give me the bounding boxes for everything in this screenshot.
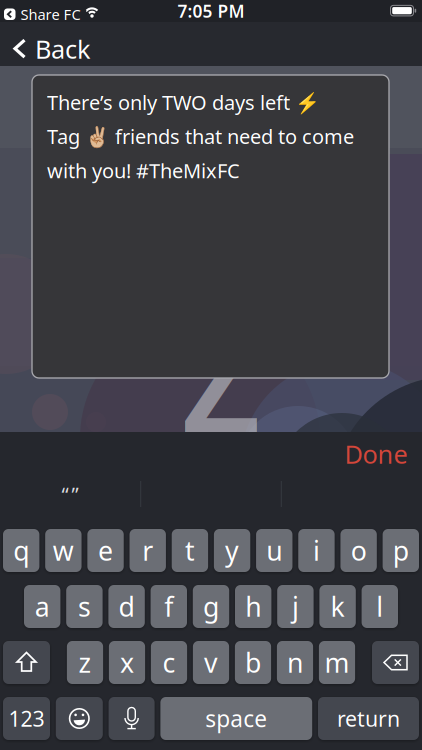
- button[interactable]: t: [172, 529, 208, 572]
- button[interactable]: i: [298, 529, 335, 572]
- staticText: w: [53, 533, 74, 568]
- button[interactable]: j: [277, 585, 314, 628]
- button[interactable]: m: [319, 641, 355, 684]
- staticText: v: [204, 645, 218, 680]
- button[interactable]: l: [362, 585, 398, 628]
- staticText: Tag ✌🏼 friends that need to come: [47, 123, 354, 150]
- button[interactable]: Dictation: [109, 697, 155, 740]
- staticText: with you! #TheMixFC: [47, 157, 240, 184]
- button[interactable]: Emoji: [56, 697, 103, 740]
- staticText: n: [287, 645, 303, 680]
- button[interactable]: k: [319, 585, 356, 628]
- button[interactable]: Done: [344, 437, 407, 471]
- button[interactable]: Back to Share FC: [4, 4, 80, 24]
- button[interactable]: Caption text field: [32, 75, 389, 378]
- button[interactable]: x: [109, 641, 145, 684]
- button[interactable]: u: [256, 529, 292, 572]
- button[interactable]: c: [151, 641, 187, 684]
- staticText: t: [185, 533, 195, 568]
- button[interactable]: h: [235, 585, 271, 628]
- staticText: z: [78, 645, 91, 680]
- button[interactable]: 123: [3, 697, 50, 740]
- staticText: x: [120, 645, 134, 680]
- staticText: a: [35, 589, 50, 624]
- button[interactable]: n: [277, 641, 313, 684]
- staticText: c: [162, 645, 175, 680]
- staticText: There’s only TWO days left ⚡: [47, 89, 320, 116]
- staticText: u: [266, 533, 282, 568]
- button[interactable]: Back: [13, 32, 91, 66]
- staticText: space: [205, 703, 267, 733]
- button[interactable]: w: [45, 529, 82, 572]
- staticText: Back: [35, 32, 91, 66]
- staticText: i: [313, 533, 320, 568]
- staticText: “ ”: [61, 481, 78, 507]
- staticText: q: [13, 533, 29, 568]
- staticText: j: [292, 589, 299, 624]
- staticText: g: [203, 589, 219, 624]
- staticText: h: [245, 589, 261, 624]
- staticText: b: [245, 645, 261, 680]
- button[interactable]: b: [235, 641, 271, 684]
- staticText: y: [225, 533, 239, 568]
- staticText: Done: [344, 437, 407, 471]
- button[interactable]: Delete: [372, 641, 419, 684]
- button[interactable]: z: [67, 641, 103, 684]
- button[interactable]: q: [3, 529, 39, 572]
- button[interactable]: v: [193, 641, 229, 684]
- staticText: l: [376, 589, 383, 624]
- button[interactable]: f: [151, 585, 187, 628]
- button[interactable]: r: [129, 529, 166, 572]
- staticText: Share FC: [20, 4, 80, 24]
- button[interactable]: space: [160, 697, 312, 740]
- button[interactable]: d: [108, 585, 145, 628]
- button[interactable]: e: [87, 529, 124, 572]
- button[interactable]: o: [340, 529, 377, 572]
- button[interactable]: a: [24, 585, 60, 628]
- button[interactable]: y: [214, 529, 250, 572]
- staticText: e: [98, 533, 113, 568]
- staticText: m: [324, 645, 349, 680]
- staticText: k: [331, 589, 345, 624]
- staticText: s: [78, 589, 91, 624]
- staticText: return: [337, 704, 400, 733]
- staticText: r: [142, 533, 153, 568]
- button[interactable]: Quotation marks suggestion: [61, 481, 78, 507]
- button[interactable]: g: [193, 585, 229, 628]
- button[interactable]: Shift: [3, 641, 50, 684]
- staticText: Z: [181, 287, 261, 471]
- staticText: d: [119, 589, 135, 624]
- staticText: p: [393, 533, 409, 568]
- staticText: 7:05 PM: [177, 0, 244, 22]
- staticText: f: [164, 589, 173, 624]
- staticText: o: [351, 533, 367, 568]
- button[interactable]: return: [318, 697, 419, 740]
- staticText: 123: [8, 704, 44, 733]
- button[interactable]: s: [66, 585, 103, 628]
- button[interactable]: p: [383, 529, 419, 572]
